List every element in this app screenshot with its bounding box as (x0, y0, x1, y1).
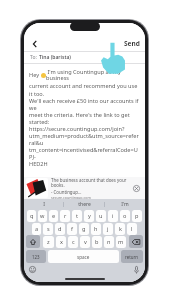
button[interactable]: return (121, 250, 143, 263)
button[interactable]: d (55, 223, 65, 235)
staticText: Hey (29, 71, 41, 79)
button[interactable]: t (72, 210, 82, 222)
button[interactable]: s (43, 223, 53, 235)
staticText: a (35, 225, 39, 233)
staticText: c (72, 238, 75, 246)
staticText: j (107, 225, 109, 233)
button[interactable]: q (27, 210, 36, 222)
button[interactable]: a (32, 223, 41, 235)
button[interactable]: c (68, 236, 78, 248)
staticText: k (119, 225, 122, 233)
button[interactable]: g (79, 223, 89, 235)
staticText: e (52, 212, 56, 220)
staticText: Tina (barista) (39, 54, 71, 61)
button[interactable]: k (115, 223, 125, 235)
staticText: r (64, 212, 67, 220)
staticText: I'm using Countingup as my business (46, 68, 140, 82)
staticText: there (78, 201, 91, 208)
staticText: o (123, 212, 127, 220)
button[interactable]: l (127, 223, 137, 235)
button[interactable]: i (108, 210, 118, 222)
staticText: I'm (121, 201, 129, 208)
staticText: q (30, 212, 34, 220)
button[interactable]: Emoji (28, 265, 37, 274)
button[interactable]: The business account that does your book… (24, 177, 145, 199)
button[interactable]: I'm (105, 199, 145, 209)
button[interactable]: f (67, 223, 77, 235)
staticText: t (76, 212, 79, 220)
button[interactable]: Dictation (132, 265, 141, 274)
button[interactable]: y (84, 210, 94, 222)
staticText: w (40, 212, 45, 220)
staticText: To: (30, 54, 39, 61)
button[interactable]: u (96, 210, 106, 222)
button[interactable]: h (91, 223, 101, 235)
button[interactable]: j (103, 223, 113, 235)
button[interactable]: shift (26, 235, 40, 248)
button[interactable]: v (80, 236, 90, 248)
staticText: b (95, 238, 99, 246)
staticText: 123 (32, 254, 40, 260)
button[interactable]: x (56, 236, 66, 248)
staticText: i (112, 212, 114, 220)
staticText: d (58, 225, 62, 233)
button[interactable]: Backspace (129, 235, 143, 248)
staticText: h (94, 225, 98, 233)
staticText: Send (124, 39, 140, 48)
button[interactable]: e (49, 210, 58, 222)
button[interactable]: z (43, 236, 54, 248)
staticText: s (47, 225, 50, 233)
staticText: current account and recommend you use it… (29, 82, 140, 167)
staticText: - Countingup... (51, 189, 82, 195)
staticText: z (47, 238, 50, 246)
button[interactable]: w (38, 210, 47, 222)
staticText: I (43, 201, 45, 208)
staticText: f (71, 225, 73, 233)
button[interactable]: there (64, 199, 104, 209)
staticText: g (82, 225, 86, 233)
staticText: n (107, 238, 111, 246)
staticText: secure.countingup.com (51, 195, 91, 199)
staticText: The business account that does your book… (51, 177, 130, 189)
button[interactable]: I (24, 199, 63, 209)
button[interactable]: Remove link preview (132, 184, 141, 193)
staticText: v (84, 238, 87, 246)
staticText: return (125, 254, 139, 260)
staticText: m (118, 238, 124, 246)
staticText: y (88, 212, 91, 220)
staticText: l (131, 225, 133, 233)
button[interactable]: Send (124, 39, 140, 48)
button[interactable]: n (104, 236, 114, 248)
staticText: p (135, 212, 139, 220)
staticText: space (77, 254, 90, 260)
button[interactable]: b (92, 236, 102, 248)
button[interactable]: r (60, 210, 70, 222)
button[interactable]: m (116, 236, 126, 248)
button[interactable]: 123 (26, 250, 46, 263)
button[interactable]: o (120, 210, 130, 222)
button[interactable]: p (132, 210, 142, 222)
staticText: x (60, 238, 63, 246)
button[interactable]: space (48, 250, 119, 263)
button[interactable]: Back (28, 37, 42, 51)
staticText: u (99, 212, 103, 220)
